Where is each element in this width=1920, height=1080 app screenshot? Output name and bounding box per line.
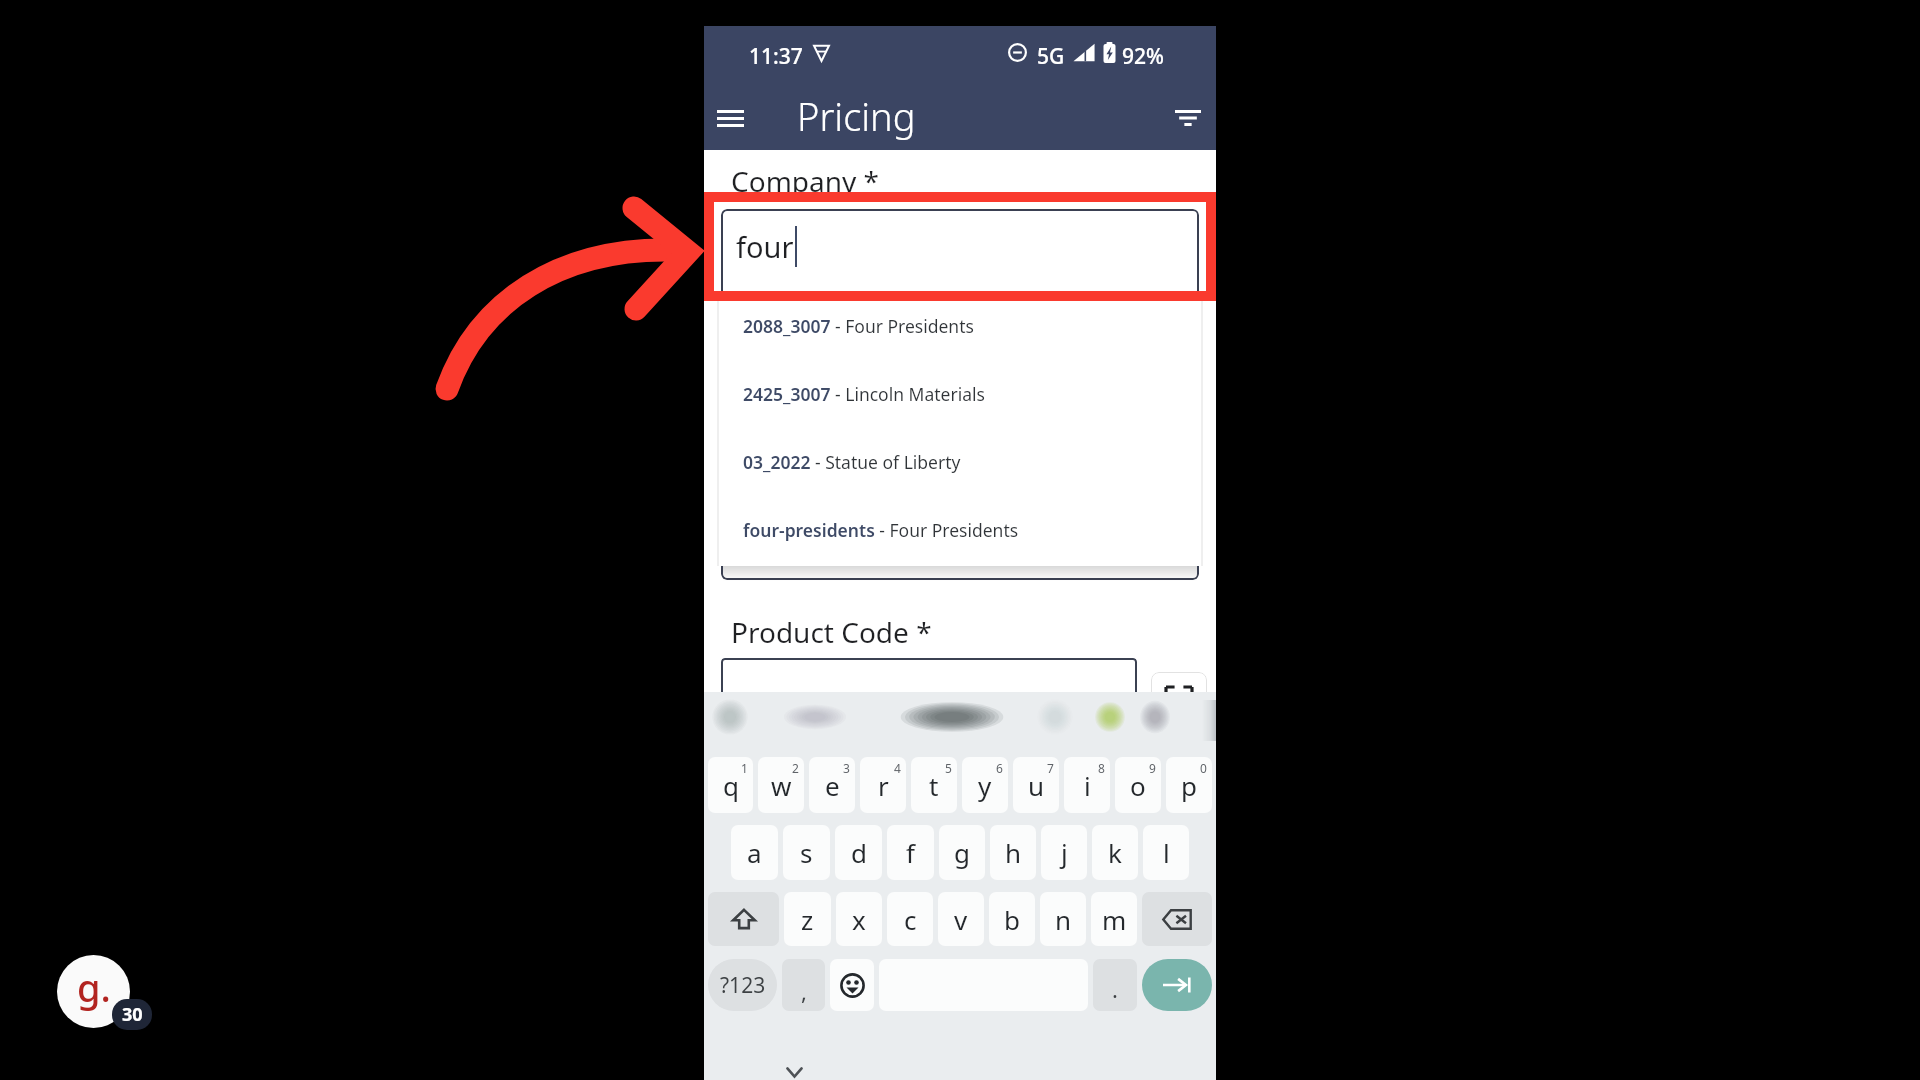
- button[interactable]: e: [809, 757, 855, 813]
- button[interactable]: d: [835, 825, 882, 880]
- staticText: 5G: [1037, 42, 1065, 71]
- staticText: i: [1084, 768, 1091, 803]
- staticText: e: [825, 768, 840, 803]
- button[interactable]: Open navigation menu: [706, 89, 754, 147]
- staticText: q: [723, 768, 739, 803]
- button[interactable]: 03_2022 - Statue of Liberty: [719, 428, 1201, 496]
- staticText: v: [954, 902, 968, 937]
- staticText: c: [904, 902, 917, 937]
- staticText: t: [929, 768, 939, 803]
- button[interactable]: o: [1115, 757, 1161, 813]
- staticText: 2425_3007 - Lincoln Materials: [743, 382, 985, 406]
- button[interactable]: b: [989, 892, 1035, 946]
- staticText: u: [1028, 768, 1045, 803]
- staticText: 0: [1200, 760, 1207, 776]
- staticText: ?123: [720, 971, 766, 1000]
- button[interactable]: [721, 658, 1137, 718]
- button[interactable]: App logo: [57, 955, 130, 1028]
- staticText: 1: [741, 760, 748, 776]
- staticText: 11:37: [749, 42, 803, 71]
- staticText: y: [978, 768, 992, 803]
- button[interactable]: ,: [782, 959, 825, 1011]
- button[interactable]: n: [1040, 892, 1086, 946]
- staticText: 4: [894, 760, 901, 776]
- button[interactable]: w: [758, 757, 804, 813]
- staticText: Pricing: [797, 90, 916, 142]
- staticText: f: [906, 835, 915, 870]
- staticText: .: [1112, 974, 1118, 1004]
- staticText: 2: [792, 760, 799, 776]
- staticText: 30: [122, 1002, 143, 1027]
- staticText: 3: [843, 760, 850, 776]
- button[interactable]: l: [1143, 825, 1189, 880]
- staticText: p: [1181, 768, 1197, 803]
- button[interactable]: t: [911, 757, 957, 813]
- staticText: Company *: [731, 162, 880, 200]
- button[interactable]: .: [1093, 959, 1137, 1011]
- staticText: 9: [1149, 760, 1156, 776]
- button[interactable]: i: [1064, 757, 1110, 813]
- button[interactable]: z: [784, 892, 831, 946]
- button[interactable]: Emoji: [830, 959, 874, 1011]
- staticText: four-presidents - Four Presidents: [743, 518, 1019, 542]
- staticText: 92%: [1122, 42, 1164, 71]
- button[interactable]: Next field: [1142, 959, 1212, 1011]
- button[interactable]: Hide keyboard: [772, 1055, 816, 1080]
- staticText: Product Code *: [731, 613, 932, 651]
- button[interactable]: u: [1013, 757, 1059, 813]
- button[interactable]: h: [990, 825, 1036, 880]
- staticText: four: [736, 227, 794, 266]
- staticText: h: [1005, 835, 1022, 870]
- button[interactable]: Shift: [708, 892, 779, 946]
- staticText: k: [1108, 835, 1122, 870]
- button[interactable]: f: [887, 825, 934, 880]
- button[interactable]: ?123: [708, 959, 777, 1011]
- staticText: j: [1061, 835, 1068, 870]
- staticText: o: [1130, 768, 1146, 803]
- button[interactable]: y: [962, 757, 1008, 813]
- staticText: 2088_3007 - Four Presidents: [743, 314, 974, 338]
- staticText: x: [852, 902, 866, 937]
- button[interactable]: g: [939, 825, 985, 880]
- button[interactable]: x: [836, 892, 882, 946]
- button[interactable]: Filter: [1164, 89, 1212, 147]
- staticText: 03_2022 - Statue of Liberty: [743, 450, 961, 474]
- staticText: z: [801, 902, 814, 937]
- staticText: d: [851, 835, 867, 870]
- button[interactable]: [721, 209, 1199, 580]
- staticText: r: [878, 768, 889, 803]
- button[interactable]: Backspace: [1142, 892, 1212, 946]
- staticText: ,: [801, 976, 807, 1006]
- staticText: a: [747, 835, 762, 870]
- staticText: g: [954, 835, 970, 870]
- button[interactable]: k: [1092, 825, 1138, 880]
- staticText: 5: [945, 760, 952, 776]
- staticText: l: [1163, 835, 1170, 870]
- staticText: m: [1102, 902, 1127, 937]
- button[interactable]: p: [1166, 757, 1212, 813]
- staticText: n: [1055, 902, 1072, 937]
- staticText: 8: [1098, 760, 1105, 776]
- button[interactable]: s: [783, 825, 830, 880]
- staticText: b: [1004, 902, 1020, 937]
- button[interactable]: c: [887, 892, 933, 946]
- button[interactable]: 2088_3007 - Four Presidents: [719, 292, 1201, 360]
- button[interactable]: a: [731, 825, 778, 880]
- button[interactable]: j: [1041, 825, 1087, 880]
- button[interactable]: m: [1091, 892, 1137, 946]
- button[interactable]: v: [938, 892, 984, 946]
- button[interactable]: four-presidents - Four Presidents: [719, 496, 1201, 564]
- staticText: g.: [77, 961, 111, 1013]
- staticText: 7: [1047, 760, 1054, 776]
- staticText: w: [771, 768, 792, 803]
- button[interactable]: r: [860, 757, 906, 813]
- button[interactable]: Scan barcode: [1151, 672, 1207, 728]
- button[interactable]: q: [708, 757, 753, 813]
- staticText: 6: [996, 760, 1003, 776]
- staticText: s: [800, 835, 813, 870]
- button[interactable]: 2425_3007 - Lincoln Materials: [719, 360, 1201, 428]
